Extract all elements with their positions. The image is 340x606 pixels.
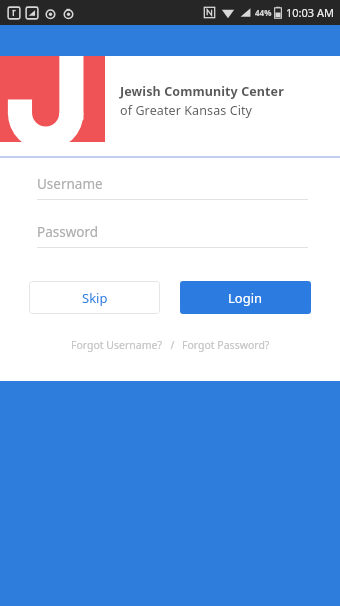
staticText: 10:03 AM <box>286 5 334 20</box>
staticText: Username <box>37 175 103 193</box>
button[interactable]: Forgot Username? <box>69 336 165 354</box>
staticText: Skip <box>82 289 108 307</box>
button[interactable]: Username <box>37 175 308 200</box>
staticText: Password <box>37 223 99 241</box>
staticText: Jewish Community Center <box>120 83 284 100</box>
button[interactable]: Skip <box>29 281 160 314</box>
staticText: 44% <box>255 7 272 18</box>
staticText: Login <box>228 289 263 307</box>
button[interactable]: Password <box>37 223 308 248</box>
staticText: Forgot Password? <box>182 338 270 352</box>
staticText: Forgot Username? <box>71 338 163 352</box>
button[interactable]: Forgot Password? <box>180 336 272 354</box>
staticText: / <box>165 338 180 352</box>
staticText: of Greater Kansas City <box>120 102 253 119</box>
button[interactable]: Login <box>180 281 311 314</box>
